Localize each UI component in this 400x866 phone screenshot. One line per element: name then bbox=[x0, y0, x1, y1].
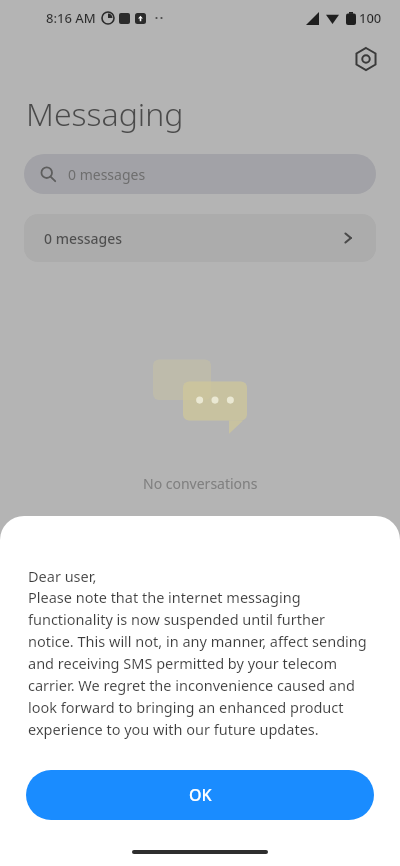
button[interactable]: 0 messages bbox=[24, 214, 376, 262]
staticText: OK bbox=[189, 784, 212, 806]
button[interactable]: Settings bbox=[348, 41, 384, 77]
staticText: 8:16 AM bbox=[46, 9, 96, 27]
button[interactable]: OK bbox=[26, 770, 374, 820]
staticText: No conversations bbox=[143, 474, 258, 493]
staticText: 0 messages bbox=[44, 229, 123, 248]
staticText: Dear user, Please note that the internet… bbox=[28, 566, 372, 740]
staticText: 0 messages bbox=[68, 165, 146, 184]
button[interactable]: 0 messages bbox=[24, 154, 376, 194]
staticText: Messaging bbox=[26, 92, 184, 136]
staticText: 100 bbox=[359, 9, 382, 27]
